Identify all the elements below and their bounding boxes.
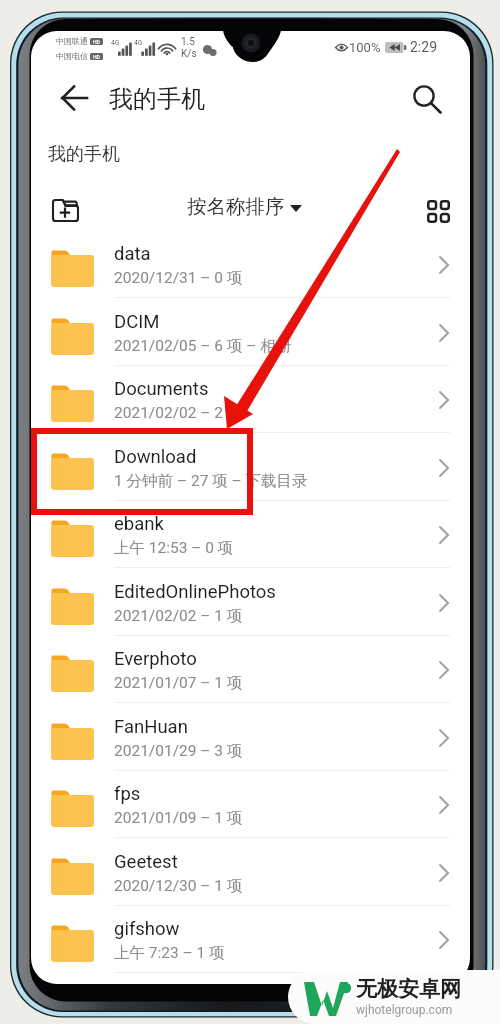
staticText: 2021/01/07 – 1 项 <box>114 673 243 693</box>
staticText: 我的手机 <box>109 84 205 114</box>
staticText: 1 分钟前 – 27 项 – 下载目录 <box>114 471 308 491</box>
button[interactable]: Geetest <box>31 838 470 906</box>
staticText: 1.5 <box>181 36 195 48</box>
staticText: Geetest <box>114 851 178 873</box>
staticText: Download <box>114 446 197 468</box>
staticText: HD <box>93 39 100 45</box>
staticText: 100% <box>349 40 381 55</box>
staticText: gifshow <box>114 918 180 940</box>
staticText: Everphoto <box>114 648 197 670</box>
button[interactable]: Back <box>54 78 96 120</box>
staticText: wjhotelgroup.com <box>356 1003 453 1017</box>
staticText: 我的手机 <box>48 143 120 166</box>
staticText: EditedOnlinePhotos <box>114 581 276 603</box>
staticText: 2020/12/31 – 0 项 <box>114 268 243 288</box>
button[interactable]: DCIM <box>31 298 470 366</box>
staticText: 4G <box>111 39 120 47</box>
button[interactable]: Search <box>403 76 447 120</box>
staticText: HD <box>93 54 100 60</box>
staticText: FanHuan <box>114 716 188 738</box>
staticText: 2021/01/09 – 1 项 <box>114 808 243 828</box>
button[interactable]: FanHuan <box>31 703 470 771</box>
button[interactable]: New folder <box>45 190 85 230</box>
staticText: 4G <box>134 39 143 47</box>
staticText: 2021/02/02 – 1 项 <box>114 606 243 626</box>
staticText: 2021/02/02 – 2 项 <box>114 403 243 423</box>
button[interactable]: Everphoto <box>31 635 470 703</box>
button[interactable]: data <box>31 230 470 298</box>
staticText: 2:29 <box>410 39 437 55</box>
button[interactable]: gifshow <box>31 905 470 973</box>
staticText: 无极安卓网 <box>356 976 461 1002</box>
button[interactable]: Grid view <box>418 191 458 231</box>
staticText: 按名称排序 <box>187 194 285 219</box>
staticText: 上午 12:53 – 0 项 <box>114 538 234 558</box>
button[interactable]: fps <box>31 770 470 838</box>
staticText: data <box>114 243 151 265</box>
staticText: 2021/01/29 – 3 项 <box>114 741 243 761</box>
button[interactable]: Documents <box>31 365 470 433</box>
staticText: 2020/12/30 – 1 项 <box>114 876 243 896</box>
button[interactable]: EditedOnlinePhotos <box>31 568 470 636</box>
staticText: DCIM <box>114 311 160 333</box>
button[interactable]: Download <box>31 433 470 501</box>
staticText: 2021/02/05 – 6 项 – 相册 <box>114 336 292 356</box>
staticText: Documents <box>114 378 209 400</box>
staticText: 中国电信 <box>56 51 88 61</box>
staticText: 上午 7:23 – 1 项 <box>114 943 225 963</box>
staticText: ebank <box>114 513 164 535</box>
staticText: fps <box>114 783 141 805</box>
button[interactable]: ebank <box>31 500 470 568</box>
staticText: K/s <box>181 48 197 60</box>
staticText: 中国联通 <box>56 36 88 46</box>
button[interactable]: 按名称排序 <box>187 194 302 219</box>
